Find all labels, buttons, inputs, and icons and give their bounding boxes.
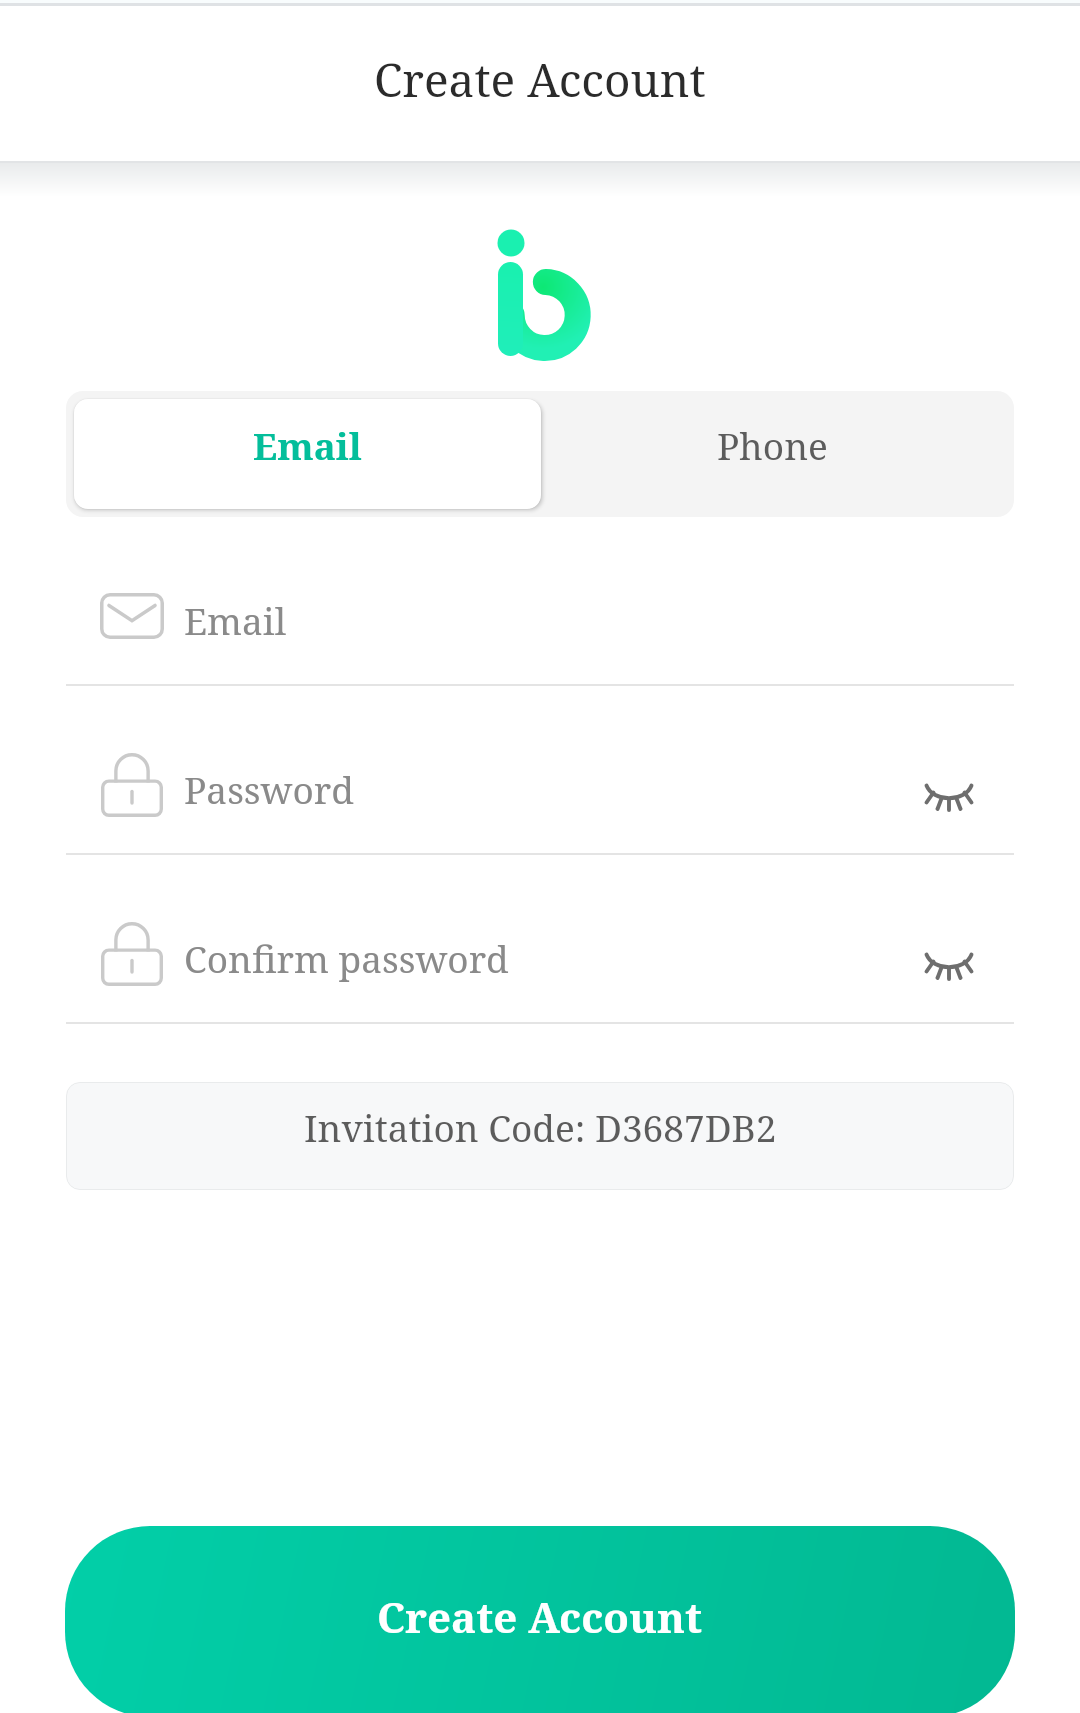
button[interactable]: Phone xyxy=(549,391,1014,517)
staticText: Phone xyxy=(717,420,828,470)
button[interactable]: Show password xyxy=(884,899,1014,1009)
staticText: Email xyxy=(184,595,287,645)
button[interactable]: Email xyxy=(66,517,1014,684)
staticText: Confirm password xyxy=(184,933,509,983)
button[interactable]: Show password xyxy=(884,730,1014,840)
staticText: Email xyxy=(253,420,362,470)
button[interactable]: Invitation Code: D3687DB2 xyxy=(66,1082,1014,1190)
staticText: Create Account xyxy=(377,1588,703,1645)
staticText: Password xyxy=(184,764,354,814)
button[interactable]: Password xyxy=(66,686,1014,853)
button[interactable]: Create Account xyxy=(65,1526,1015,1713)
button[interactable]: Email xyxy=(74,399,541,509)
staticText: Invitation Code: D3687DB2 xyxy=(304,1102,777,1152)
button[interactable]: Confirm password xyxy=(66,855,1014,1022)
staticText: Create Account xyxy=(374,48,706,111)
